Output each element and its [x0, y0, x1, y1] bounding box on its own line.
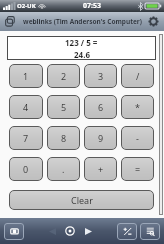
button[interactable]: 3: [84, 64, 117, 88]
staticText: 8: [61, 132, 67, 144]
staticText: +: [98, 163, 104, 175]
staticText: 0: [23, 163, 29, 175]
button[interactable]: 0: [9, 157, 43, 181]
button[interactable]: /: [121, 64, 154, 88]
staticText: 5: [61, 101, 67, 113]
staticText: weblinks (Tim Anderson's Computer): [23, 17, 142, 26]
staticText: 4: [23, 101, 29, 113]
button[interactable]: Stop: [63, 224, 77, 238]
button[interactable]: +: [84, 157, 117, 181]
staticText: -: [136, 132, 139, 144]
button[interactable]: Back: [45, 224, 59, 238]
staticText: 9: [98, 132, 104, 144]
button[interactable]: Clear: [9, 190, 154, 210]
staticText: Clear: [71, 194, 93, 206]
staticText: 07:53: [83, 1, 101, 11]
staticText: 24.6: [74, 49, 90, 60]
button[interactable]: Search list: [140, 223, 160, 240]
button[interactable]: 7: [9, 126, 43, 150]
button[interactable]: .: [47, 157, 80, 181]
staticText: *: [135, 101, 140, 113]
staticText: 3: [98, 70, 104, 82]
button[interactable]: -: [121, 126, 154, 150]
button[interactable]: 9: [84, 126, 117, 150]
button[interactable]: 1: [9, 64, 43, 88]
staticText: 6: [98, 101, 104, 113]
button[interactable]: Zoom: [117, 223, 137, 240]
staticText: 123 / 5 =: [65, 37, 98, 48]
staticText: =: [135, 163, 141, 175]
button[interactable]: 4: [9, 95, 43, 119]
staticText: /: [136, 70, 140, 82]
button[interactable]: 8: [47, 126, 80, 150]
button[interactable]: Settings: [146, 14, 161, 29]
staticText: 7: [23, 132, 29, 144]
staticText: 1: [23, 70, 29, 82]
button[interactable]: *: [121, 95, 154, 119]
button[interactable]: =: [121, 157, 154, 181]
button[interactable]: Tabs: [3, 14, 18, 29]
staticText: O2-UK: [17, 2, 36, 10]
staticText: .: [62, 163, 65, 175]
staticText: 2: [61, 70, 67, 82]
button[interactable]: 6: [84, 95, 117, 119]
button[interactable]: Forward: [81, 224, 95, 238]
button[interactable]: 2: [47, 64, 80, 88]
button[interactable]: 5: [47, 95, 80, 119]
button[interactable]: Windows: [4, 223, 24, 240]
